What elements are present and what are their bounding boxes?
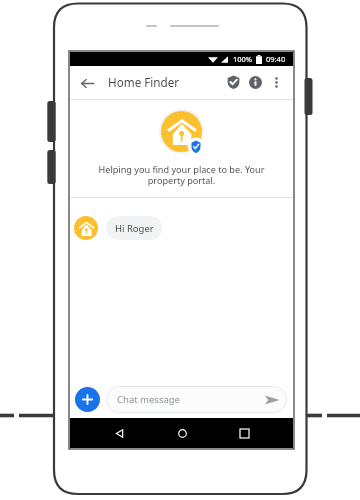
button[interactable]: Verified: [222, 72, 244, 94]
button[interactable]: Add: [75, 387, 100, 412]
staticText: Helping you find your place to be. Your …: [88, 163, 275, 187]
staticText: Hi Roger: [115, 222, 154, 235]
button[interactable]: Info: [244, 72, 266, 94]
button[interactable]: Back: [74, 70, 100, 96]
button[interactable]: Recents: [231, 420, 257, 446]
staticText: Chat message: [117, 393, 180, 406]
staticText: 09:40: [266, 54, 286, 64]
button[interactable]: Home: [169, 420, 195, 446]
button[interactable]: Chat message: [106, 386, 287, 413]
button[interactable]: Hi Roger: [106, 216, 162, 240]
button[interactable]: Back: [106, 420, 132, 446]
staticText: Home Finder: [108, 74, 180, 90]
other: Send: [264, 393, 280, 407]
button[interactable]: More options: [266, 73, 286, 93]
staticText: 100%: [233, 54, 253, 64]
